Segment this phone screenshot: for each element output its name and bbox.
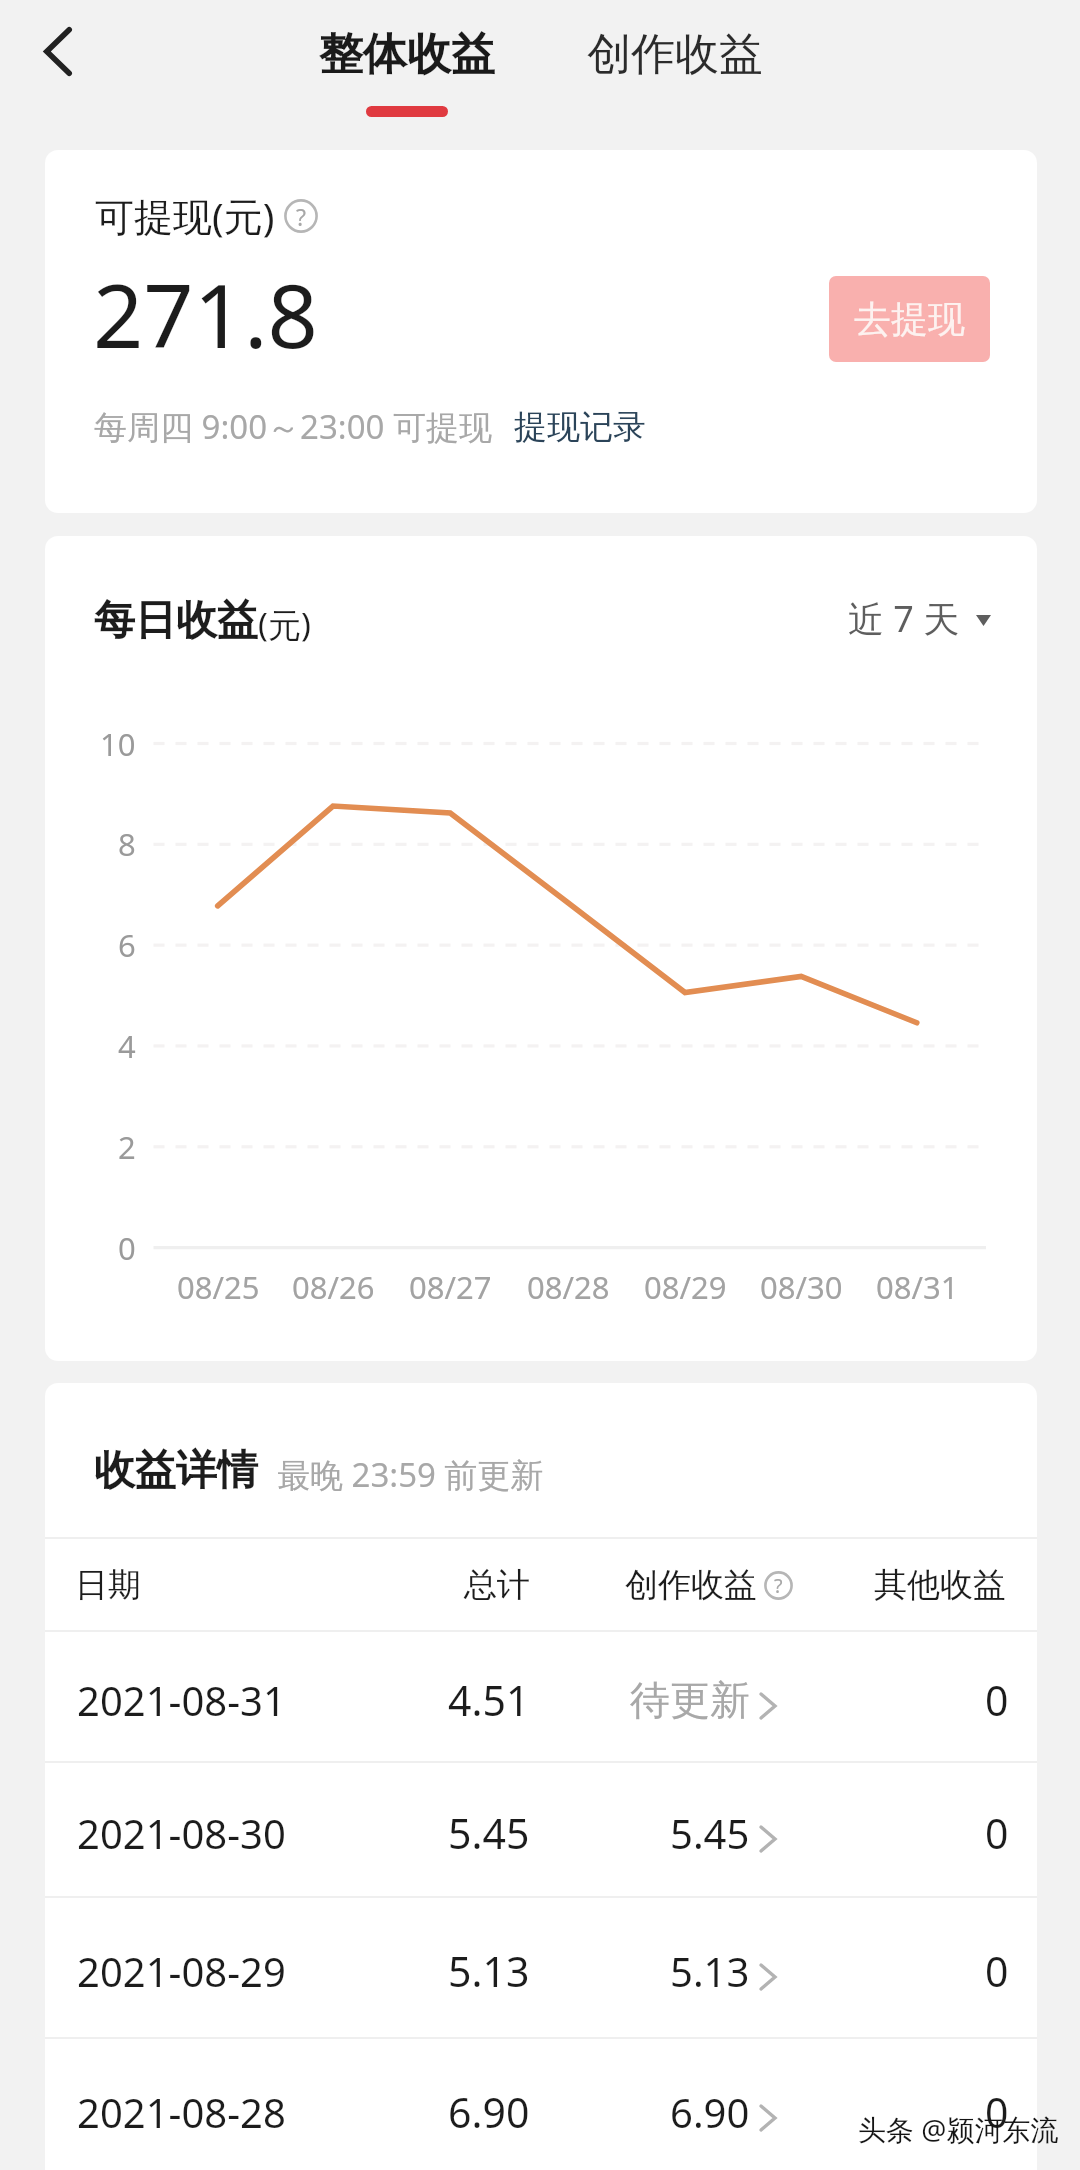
staticText: 近 7 天 — [848, 594, 960, 643]
button[interactable]: Back — [10, 3, 106, 99]
staticText: 5.13 — [448, 1943, 530, 1999]
staticText: 08/31 — [876, 1266, 959, 1308]
staticText: 日期 — [75, 1564, 141, 1606]
staticText: 2021-08-29 — [77, 1944, 286, 1998]
staticText: 2021-08-28 — [77, 2085, 286, 2139]
staticText: 最晚 23:59 前更新 — [277, 1452, 544, 1497]
staticText: 5.13 — [670, 1944, 750, 1998]
staticText: 6.90 — [448, 2084, 530, 2140]
button[interactable]: 2021-08-28 — [45, 2039, 1037, 2170]
button[interactable]: Help — [284, 199, 318, 233]
button[interactable]: Help — [764, 1571, 793, 1600]
button[interactable]: 创作收益 — [567, 27, 783, 137]
staticText: ? — [774, 1572, 783, 1599]
staticText: 6.90 — [670, 2085, 750, 2139]
button[interactable]: 提现记录 — [514, 406, 646, 448]
staticText: 5.45 — [448, 1805, 530, 1861]
staticText: 4.51 — [448, 1672, 530, 1728]
button[interactable]: 2021-08-30 — [45, 1763, 1037, 1896]
staticText: 08/28 — [527, 1266, 610, 1308]
staticText: 8 — [118, 823, 136, 865]
staticText: 提现记录 — [514, 406, 646, 448]
button[interactable]: 整体收益 — [299, 27, 515, 137]
staticText: 0 — [118, 1227, 136, 1269]
staticText: 每日收益 — [94, 595, 258, 647]
staticText: 其他收益 — [874, 1564, 1006, 1606]
button[interactable]: 近 7 天 — [848, 594, 991, 643]
staticText: 10 — [100, 723, 136, 765]
staticText: 271.8 — [93, 254, 318, 374]
staticText: 08/25 — [177, 1266, 260, 1308]
staticText: 2021-08-31 — [77, 1673, 286, 1727]
staticText: 2021-08-30 — [77, 1806, 286, 1860]
button[interactable]: 2021-08-29 — [45, 1898, 1037, 2037]
staticText: 0 — [985, 1943, 1009, 1999]
staticText: 5.45 — [670, 1806, 750, 1860]
staticText: ? — [296, 201, 307, 232]
staticText: 0 — [985, 1672, 1009, 1728]
staticText: 08/29 — [644, 1266, 727, 1308]
staticText: 去提现 — [854, 296, 965, 343]
button[interactable]: 去提现 — [829, 276, 990, 362]
staticText: 0 — [985, 2084, 1009, 2140]
staticText: 头条 @颍河东流 — [858, 2110, 1059, 2148]
staticText: 6 — [118, 924, 136, 966]
staticText: 创作收益 — [587, 27, 763, 82]
staticText: 2 — [118, 1126, 136, 1168]
staticText: 08/26 — [292, 1266, 375, 1308]
staticText: 创作收益 — [625, 1564, 757, 1606]
staticText: 整体收益 — [319, 27, 495, 82]
staticText: 每周四 9:00～23:00 可提现 — [94, 404, 492, 449]
button[interactable]: 2021-08-31 — [45, 1632, 1037, 1761]
staticText: 总计 — [464, 1564, 530, 1606]
staticText: 待更新 — [630, 1675, 750, 1725]
staticText: 08/27 — [409, 1266, 492, 1308]
staticText: 收益详情 — [94, 1445, 258, 1497]
staticText: 08/30 — [760, 1266, 843, 1308]
staticText: 4 — [118, 1025, 136, 1067]
staticText: 0 — [985, 1805, 1009, 1861]
staticText: 可提现(元) — [95, 189, 275, 242]
staticText: (元) — [258, 602, 311, 647]
